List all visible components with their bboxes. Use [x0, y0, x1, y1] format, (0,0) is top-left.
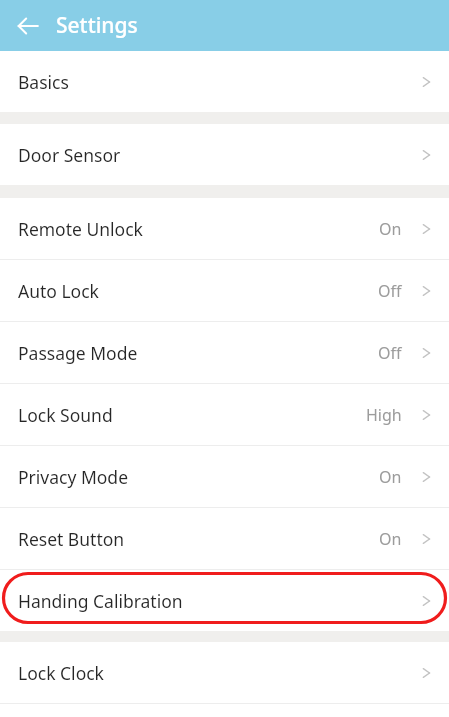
- staticText: Lock Clock: [18, 661, 104, 685]
- staticText: Door Sensor: [18, 143, 121, 167]
- staticText: Lock Sound: [18, 403, 113, 427]
- button[interactable]: Passage Mode: [0, 322, 449, 383]
- staticText: Basics: [18, 70, 69, 94]
- button[interactable]: Basics: [0, 51, 449, 112]
- button[interactable]: Door Sensor: [0, 124, 449, 185]
- staticText: On: [379, 528, 402, 550]
- staticText: High: [366, 404, 402, 426]
- staticText: Remote Unlock: [18, 217, 143, 241]
- staticText: On: [379, 218, 402, 240]
- staticText: Auto Lock: [18, 279, 99, 303]
- staticText: Reset Button: [18, 527, 125, 551]
- button[interactable]: Back: [6, 4, 50, 48]
- staticText: On: [379, 466, 402, 488]
- staticText: Settings: [56, 11, 138, 40]
- button[interactable]: Handing Calibration: [0, 570, 449, 631]
- button[interactable]: Remote Unlock: [0, 198, 449, 259]
- button[interactable]: Lock Sound: [0, 384, 449, 445]
- staticText: Privacy Mode: [18, 465, 129, 489]
- staticText: Off: [378, 280, 402, 302]
- staticText: Off: [378, 342, 402, 364]
- button[interactable]: Auto Lock: [0, 260, 449, 321]
- staticText: Passage Mode: [18, 341, 138, 365]
- button[interactable]: Lock Clock: [0, 642, 449, 703]
- button[interactable]: Privacy Mode: [0, 446, 449, 507]
- staticText: Handing Calibration: [18, 589, 183, 613]
- button[interactable]: Reset Button: [0, 508, 449, 569]
